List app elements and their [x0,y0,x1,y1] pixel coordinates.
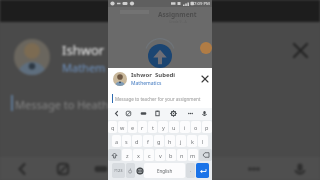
button[interactable]: z [122,149,132,161]
staticText: a [115,138,119,145]
staticText: p [205,124,209,131]
staticText: ?123 [114,168,123,173]
button[interactable]: . [186,163,195,178]
staticText: g [157,138,161,145]
button[interactable]: l [198,135,208,147]
staticText: c [148,152,151,159]
button[interactable]: d [132,135,142,147]
staticText: e [131,124,135,131]
button[interactable]: w [118,121,127,133]
button[interactable]: c [144,149,154,161]
button[interactable]: v [155,149,165,161]
staticText: i [184,124,186,131]
button[interactable]: p [202,121,212,133]
button[interactable]: x [133,149,143,161]
staticText: r [141,124,144,131]
button[interactable]: More options [185,108,196,119]
button[interactable]: k [187,135,197,147]
button[interactable]: GIF [138,108,149,119]
button[interactable]: n [177,149,187,161]
button[interactable]: b [166,149,176,161]
staticText: u [172,124,176,131]
button[interactable]: y [158,121,168,133]
staticText: j [180,138,182,145]
staticText: . [190,167,192,174]
staticText: Mathem [62,60,106,75]
staticText: v [159,152,162,159]
button[interactable]: r [138,121,147,133]
staticText: Ishwor Subedi [131,71,176,79]
staticText: b [169,152,173,159]
button[interactable]: Back [111,108,122,119]
button[interactable]: a [112,135,121,147]
button[interactable]: i [180,121,190,133]
button[interactable]: Change language [136,163,143,178]
staticText: Mathematics [131,80,162,87]
staticText: w [120,124,125,131]
staticText: h [168,138,172,145]
button[interactable]: Stickers [123,108,134,119]
staticText: d [135,138,139,145]
staticText: 7:09 PM [194,1,210,7]
button[interactable]: Shift [108,149,121,161]
button[interactable]: Emoji [126,163,135,178]
staticText: m [190,152,196,159]
button[interactable]: s [122,135,131,147]
button[interactable]: o [191,121,201,133]
button[interactable]: q [108,121,117,133]
button[interactable]: Voice input [199,108,210,119]
button[interactable]: e [128,121,137,133]
staticText: Ishwor [62,41,105,59]
staticText: o [194,124,198,131]
staticText: z [126,152,129,159]
button[interactable]: j [176,135,186,147]
button[interactable]: h [165,135,175,147]
button[interactable]: t [148,121,157,133]
button[interactable]: Enter [196,163,209,178]
staticText: f [147,138,149,145]
staticText: t [152,124,154,131]
staticText: Message to Heath [15,97,109,112]
staticText: Assignment [158,10,197,19]
staticText: q [111,124,115,131]
button[interactable]: Upload assignment [148,44,172,68]
staticText: y [162,124,165,131]
button[interactable]: Backspace [199,149,212,161]
button[interactable]: Close [200,74,209,83]
staticText: x [137,152,140,159]
button[interactable]: ?123 [112,163,125,178]
staticText: n [180,152,184,159]
button[interactable]: Clipboard [152,108,163,119]
staticText: l [202,138,204,145]
button[interactable]: Settings [168,108,179,119]
staticText: s [125,138,128,145]
button[interactable]: f [143,135,153,147]
staticText: k [191,138,194,145]
staticText: English [157,168,173,174]
button[interactable]: English [144,163,185,178]
button[interactable]: g [154,135,164,147]
button[interactable]: m [188,149,198,161]
staticText: Message to teacher for your assignment [115,96,201,102]
button[interactable]: u [169,121,179,133]
